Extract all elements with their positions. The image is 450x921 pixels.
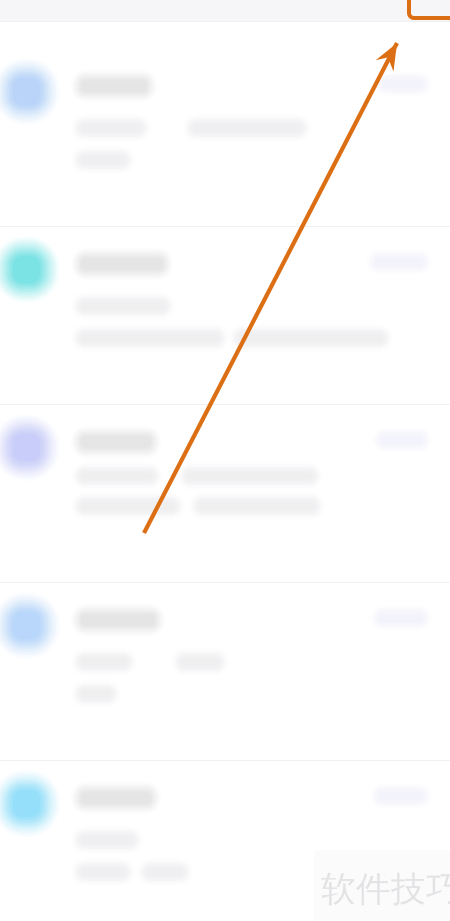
staticText: 软件技巧 bbox=[321, 868, 450, 911]
button[interactable] bbox=[0, 406, 450, 584]
button[interactable] bbox=[0, 584, 450, 762]
button[interactable] bbox=[0, 50, 450, 228]
button[interactable] bbox=[0, 762, 450, 921]
button[interactable] bbox=[0, 228, 450, 406]
